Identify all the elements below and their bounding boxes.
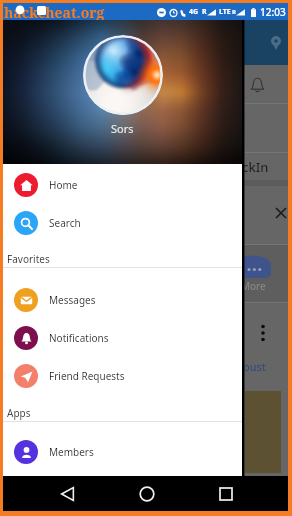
staticText: More (241, 279, 266, 293)
button[interactable]: Friend Requests (3, 357, 242, 395)
button[interactable]: Back (50, 477, 84, 511)
staticText: Members (49, 445, 94, 459)
staticText: 12:03 (260, 5, 286, 19)
staticText: Messages (49, 293, 96, 307)
staticText: oust (243, 359, 266, 374)
staticText: Favorites (7, 252, 50, 266)
button[interactable]: Members (3, 433, 242, 471)
staticText: hackcheat.org (4, 3, 105, 20)
staticText: ckIn (242, 158, 269, 176)
staticText: R (202, 7, 207, 17)
staticText: LTE (219, 7, 231, 17)
staticText: Home (49, 178, 78, 192)
staticText: Friend Requests (49, 369, 125, 383)
button[interactable]: Location (265, 32, 287, 54)
button[interactable]: Recents (209, 477, 243, 511)
button[interactable]: Close (276, 208, 286, 218)
button[interactable]: Messages (3, 281, 242, 319)
button[interactable]: Notifications (3, 319, 242, 357)
staticText: 4G (189, 7, 199, 17)
button[interactable]: Home (3, 166, 242, 204)
button[interactable]: Home (130, 477, 164, 511)
staticText: Apps (7, 406, 31, 420)
staticText: R (232, 8, 236, 16)
staticText: Search (49, 216, 81, 230)
staticText: Sors (111, 121, 134, 136)
button[interactable]: Search (3, 204, 242, 242)
staticText: Notifications (49, 331, 109, 345)
